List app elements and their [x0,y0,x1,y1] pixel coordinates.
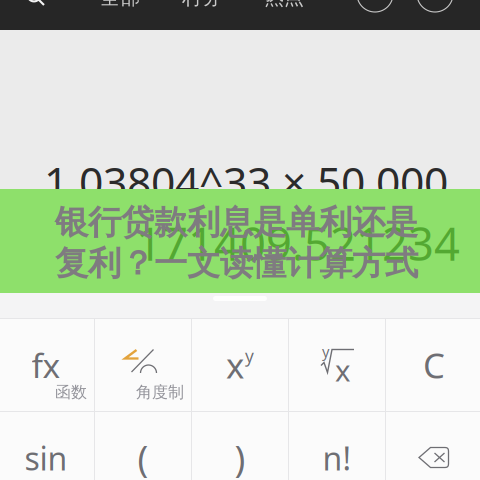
staticText: ) [234,434,245,480]
button[interactable]: ) [192,412,288,480]
staticText: 村务 [182,0,222,10]
button[interactable]: 热点 [264,0,304,10]
button[interactable]: ( [95,412,191,480]
staticText: y [245,344,254,367]
staticText: 热点 [264,0,304,10]
staticText: 函数 [55,382,87,402]
button[interactable]: x [192,319,288,411]
button[interactable]: 村务 [182,0,222,10]
staticText: 171409.521234 [136,213,460,273]
button[interactable]: Search [26,0,46,7]
button[interactable]: Download [417,0,453,12]
button[interactable]: fx [0,319,94,411]
staticText: sin [24,437,67,479]
button[interactable]: 全部 [100,0,140,10]
button[interactable]: sin [0,412,94,480]
staticText: x [226,342,244,388]
staticText: C [423,342,445,388]
staticText: 角度制 [136,382,184,402]
staticText: fx [31,343,60,387]
staticText: n! [322,437,351,479]
staticText: 复利？一文读懂计算方式 [55,243,418,284]
staticText: x [335,350,351,389]
staticText: 1.03804^33 × 50,000 [44,153,448,210]
staticText: ( [137,434,148,480]
staticText: 全部 [100,0,140,10]
button[interactable]: Top articles [357,0,393,12]
button[interactable]: n! [289,412,385,480]
staticText: 银行贷款利息是单利还是 [55,202,418,243]
button[interactable]: 角度制 [95,319,191,411]
button[interactable]: C [386,319,480,411]
staticText: y [322,341,329,361]
button[interactable]: y [289,319,385,411]
button[interactable] [386,412,480,480]
